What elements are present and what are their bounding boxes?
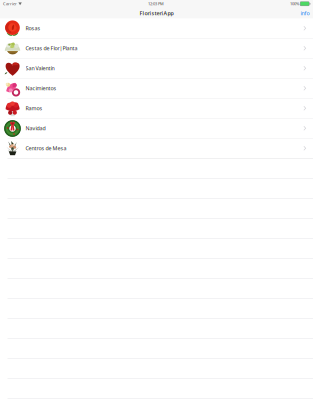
staticText: 12:03 PM xyxy=(148,1,164,6)
staticText: Navidad xyxy=(26,125,46,132)
button[interactable]: Rosas xyxy=(0,19,313,39)
staticText: San Valentín xyxy=(26,65,55,72)
staticText: 100% xyxy=(290,1,299,6)
staticText: FloristeriApp xyxy=(139,10,173,17)
staticText: Ramos xyxy=(26,105,43,112)
button[interactable]: Ramos xyxy=(0,99,313,119)
button[interactable]: info xyxy=(300,8,313,19)
button[interactable]: Centros de Mesa xyxy=(0,139,313,159)
button[interactable]: Nacimientos xyxy=(0,79,313,99)
button[interactable]: Cestas de Flor|Planta xyxy=(0,39,313,59)
staticText: Cestas de Flor|Planta xyxy=(26,45,78,52)
staticText: Rosas xyxy=(26,25,41,32)
button[interactable]: Navidad xyxy=(0,119,313,139)
staticText: Carrier xyxy=(3,1,17,6)
staticText: Centros de Mesa xyxy=(26,145,67,152)
button[interactable]: San Valentín xyxy=(0,59,313,79)
staticText: Nacimientos xyxy=(26,85,57,92)
staticText: info xyxy=(300,10,309,17)
